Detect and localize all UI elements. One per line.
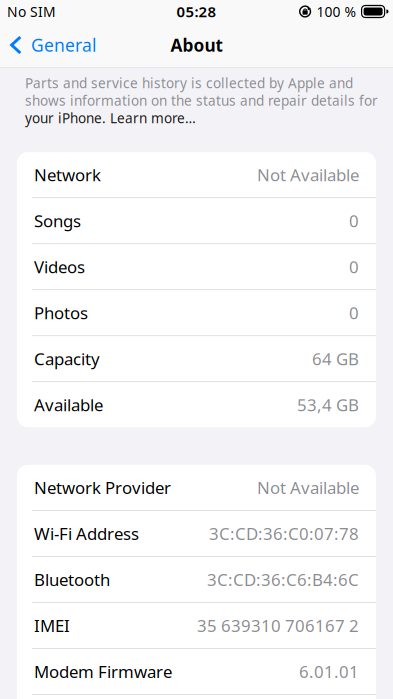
staticText: IMEI — [34, 614, 70, 637]
staticText: 0 — [349, 255, 359, 278]
button[interactable]: IMEI — [17, 603, 376, 648]
button[interactable]: Modem Firmware — [17, 649, 376, 694]
staticText: 35 639310 706167 2 — [197, 614, 359, 637]
staticText: No SIM — [7, 2, 56, 21]
staticText: Network — [34, 163, 101, 186]
staticText: Wi-Fi Address — [34, 522, 139, 545]
button[interactable]: Wi-Fi Address — [17, 511, 376, 556]
staticText: Songs — [34, 209, 81, 232]
button[interactable]: Available — [17, 382, 376, 427]
staticText: Parts and service history is collected b… — [25, 74, 353, 92]
button[interactable]: Capacity — [17, 336, 376, 381]
staticText: 100 % — [317, 2, 357, 21]
button[interactable]: General — [2, 23, 105, 67]
staticText: 05:28 — [176, 1, 216, 22]
staticText: Photos — [34, 301, 88, 324]
staticText: 3C:CD:36:C0:07:78 — [209, 522, 359, 545]
staticText: 53,4 GB — [297, 393, 359, 416]
button[interactable]: Photos — [17, 290, 376, 335]
staticText: Capacity — [34, 347, 100, 370]
staticText: Modem Firmware — [34, 660, 172, 683]
staticText: 0 — [349, 301, 359, 324]
button[interactable]: Videos — [17, 244, 376, 289]
staticText: Bluetooth — [34, 568, 110, 591]
staticText: Not Available — [257, 476, 359, 499]
button[interactable]: Network — [17, 152, 376, 197]
button[interactable]: Bluetooth — [17, 557, 376, 602]
staticText: Not Available — [257, 163, 359, 186]
staticText: 0 — [349, 209, 359, 232]
staticText: your iPhone. Learn more… — [25, 109, 196, 127]
staticText: 6.01.01 — [299, 660, 359, 683]
staticText: Videos — [34, 255, 85, 278]
staticText: General — [31, 33, 97, 57]
staticText: 64 GB — [312, 347, 359, 370]
staticText: About — [170, 33, 222, 57]
button[interactable]: Songs — [17, 198, 376, 243]
staticText: Available — [34, 393, 103, 416]
button[interactable]: Network Provider — [17, 465, 376, 510]
staticText: shows information on the status and repa… — [25, 91, 378, 110]
staticText: Network Provider — [34, 476, 171, 499]
staticText: 3C:CD:36:C6:B4:6C — [207, 568, 359, 591]
